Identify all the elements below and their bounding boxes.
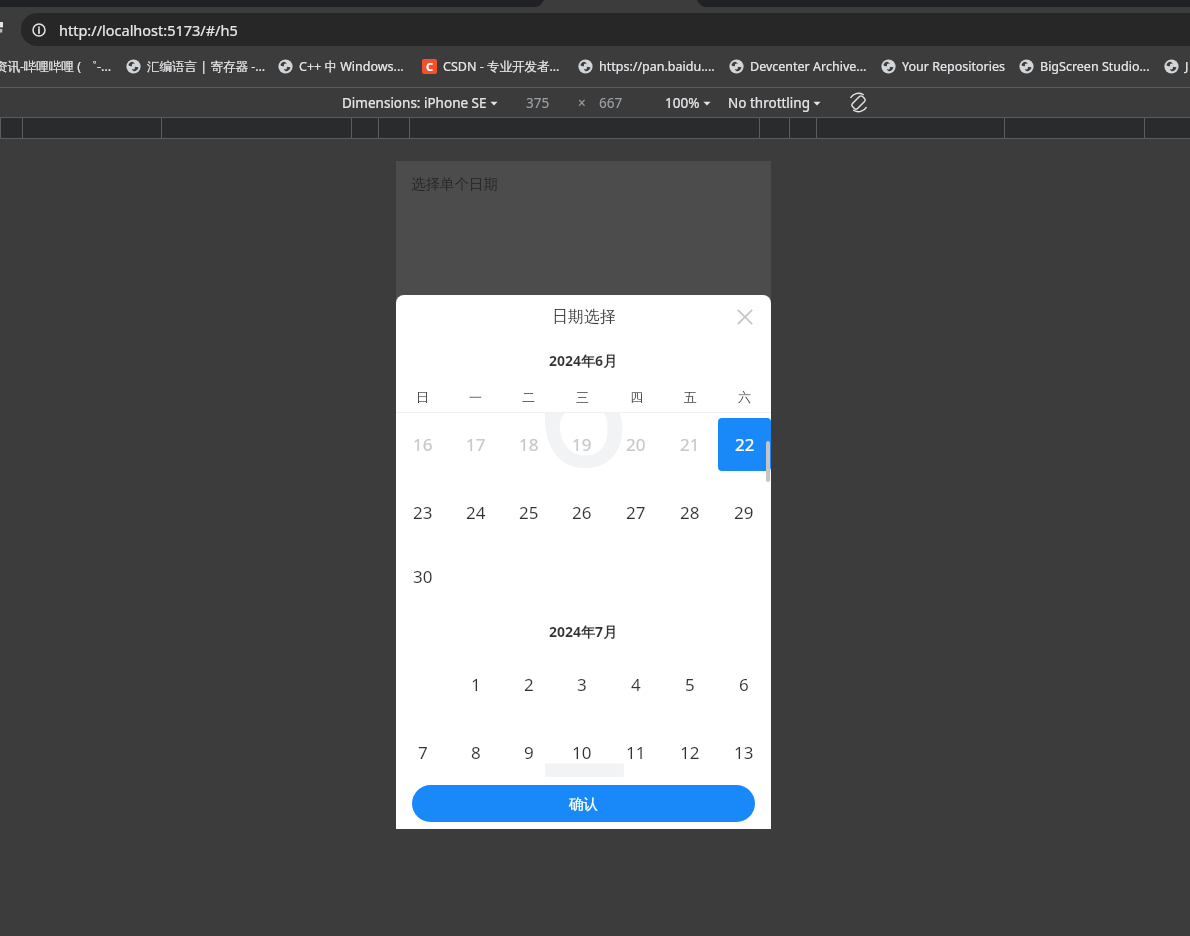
button[interactable]: 19 (555, 413, 609, 476)
staticText: 日期选择 (552, 307, 616, 327)
button[interactable]: 13 (717, 720, 771, 784)
button[interactable]: 26 (555, 480, 609, 544)
button[interactable]: 确认 (412, 785, 755, 822)
button[interactable]: No throttling (728, 88, 821, 117)
staticText: 17 (466, 433, 486, 456)
staticText: 六 (738, 389, 751, 405)
button[interactable]: 4 (609, 652, 663, 716)
staticText: × (578, 94, 586, 112)
button[interactable]: Close (730, 302, 760, 332)
button[interactable]: Site information (21, 13, 1190, 46)
staticText: 二 (522, 389, 535, 405)
staticText: 13 (734, 741, 754, 764)
button[interactable]: 30 (396, 544, 449, 608)
button[interactable]: 24 (449, 480, 502, 544)
staticText: 7 (418, 741, 428, 764)
staticText: 22 (735, 433, 755, 456)
button[interactable]: 2 (502, 652, 555, 716)
staticText: C (426, 59, 434, 74)
staticText: 25 (519, 501, 539, 524)
staticText: 1 (471, 673, 481, 696)
button[interactable]: BigScreen Studio... (1019, 46, 1150, 87)
button[interactable]: 1 (449, 652, 502, 716)
button[interactable]: J (1164, 46, 1189, 87)
staticText: 资讯-哔哩哔哩 ( ゜-... (0, 58, 112, 75)
staticText: BigScreen Studio... (1040, 58, 1150, 75)
button[interactable]: Rotate device (846, 88, 870, 117)
staticText: 汇编语言 | 寄存器 -... (147, 58, 266, 75)
button[interactable]: Your Repositories (881, 46, 1005, 87)
staticText: 2024年6月 (549, 351, 618, 370)
button[interactable]: 28 (663, 480, 717, 544)
staticText: 24 (466, 501, 486, 524)
button[interactable]: 29 (717, 480, 771, 544)
staticText: 29 (734, 501, 754, 524)
staticText: 三 (576, 389, 589, 405)
staticText: 23 (413, 501, 433, 524)
staticText: 11 (626, 741, 646, 764)
staticText: 6 (739, 673, 749, 696)
staticText: 30 (413, 565, 433, 588)
button[interactable]: C (422, 46, 560, 87)
staticText: J (1185, 58, 1189, 75)
staticText: 5 (685, 673, 695, 696)
button[interactable]: Site information (29, 20, 49, 40)
staticText: 7 (538, 707, 632, 785)
button[interactable]: 100% (665, 88, 711, 117)
button[interactable]: Devcenter Archive... (729, 46, 867, 87)
button[interactable]: 22 (717, 413, 771, 476)
button[interactable]: 20 (609, 413, 663, 476)
staticText: 2 (524, 673, 534, 696)
staticText: Devcenter Archive... (750, 58, 867, 75)
staticText: Dimensions: iPhone SE (342, 94, 487, 112)
staticText: 4 (631, 673, 641, 696)
staticText: 28 (680, 501, 700, 524)
staticText: 2024年7月 (549, 622, 618, 641)
staticText: 12 (680, 741, 700, 764)
button[interactable]: 9 (502, 720, 555, 784)
button[interactable]: 23 (396, 480, 449, 544)
staticText: 26 (572, 501, 592, 524)
staticText: 18 (519, 433, 539, 456)
button[interactable]: 17 (449, 413, 502, 476)
button[interactable]: 6 (717, 652, 771, 716)
button[interactable]: 汇编语言 | 寄存器 -... (126, 46, 266, 87)
staticText: Your Repositories (902, 58, 1005, 75)
staticText: C++ 中 Windows... (299, 58, 404, 75)
button[interactable]: 16 (396, 413, 449, 476)
staticText: http://localhost:5173/#/h5 (59, 20, 238, 40)
staticText: 五 (684, 389, 697, 405)
button[interactable]: 25 (502, 480, 555, 544)
staticText: 6 (536, 413, 630, 514)
staticText: No throttling (728, 94, 810, 112)
button[interactable]: 选择单个日期 (396, 162, 771, 206)
staticText: 21 (680, 433, 700, 456)
button[interactable]: C++ 中 Windows... (278, 46, 404, 87)
button[interactable]: 资讯-哔哩哔哩 ( ゜-... (0, 46, 112, 87)
staticText: 100% (665, 94, 700, 112)
button[interactable]: 8 (449, 720, 502, 784)
button[interactable]: 12 (663, 720, 717, 784)
button[interactable]: 10 (555, 720, 609, 784)
button[interactable]: 5 (663, 652, 717, 716)
button[interactable]: 27 (609, 480, 663, 544)
button[interactable]: 21 (663, 413, 717, 476)
staticText: 9 (524, 741, 534, 764)
staticText: 日 (416, 389, 429, 405)
staticText: 一 (469, 389, 482, 405)
staticText: 3 (577, 673, 587, 696)
button[interactable]: 11 (609, 720, 663, 784)
button[interactable]: Dimensions: iPhone SE (342, 88, 498, 117)
staticText: 选择单个日期 (411, 175, 498, 193)
button[interactable]: 7 (396, 720, 449, 784)
button[interactable]: 18 (502, 413, 555, 476)
button[interactable]: 3 (555, 652, 609, 716)
button[interactable]: https://pan.baidu.... (578, 46, 715, 87)
staticText: 10 (572, 741, 592, 764)
